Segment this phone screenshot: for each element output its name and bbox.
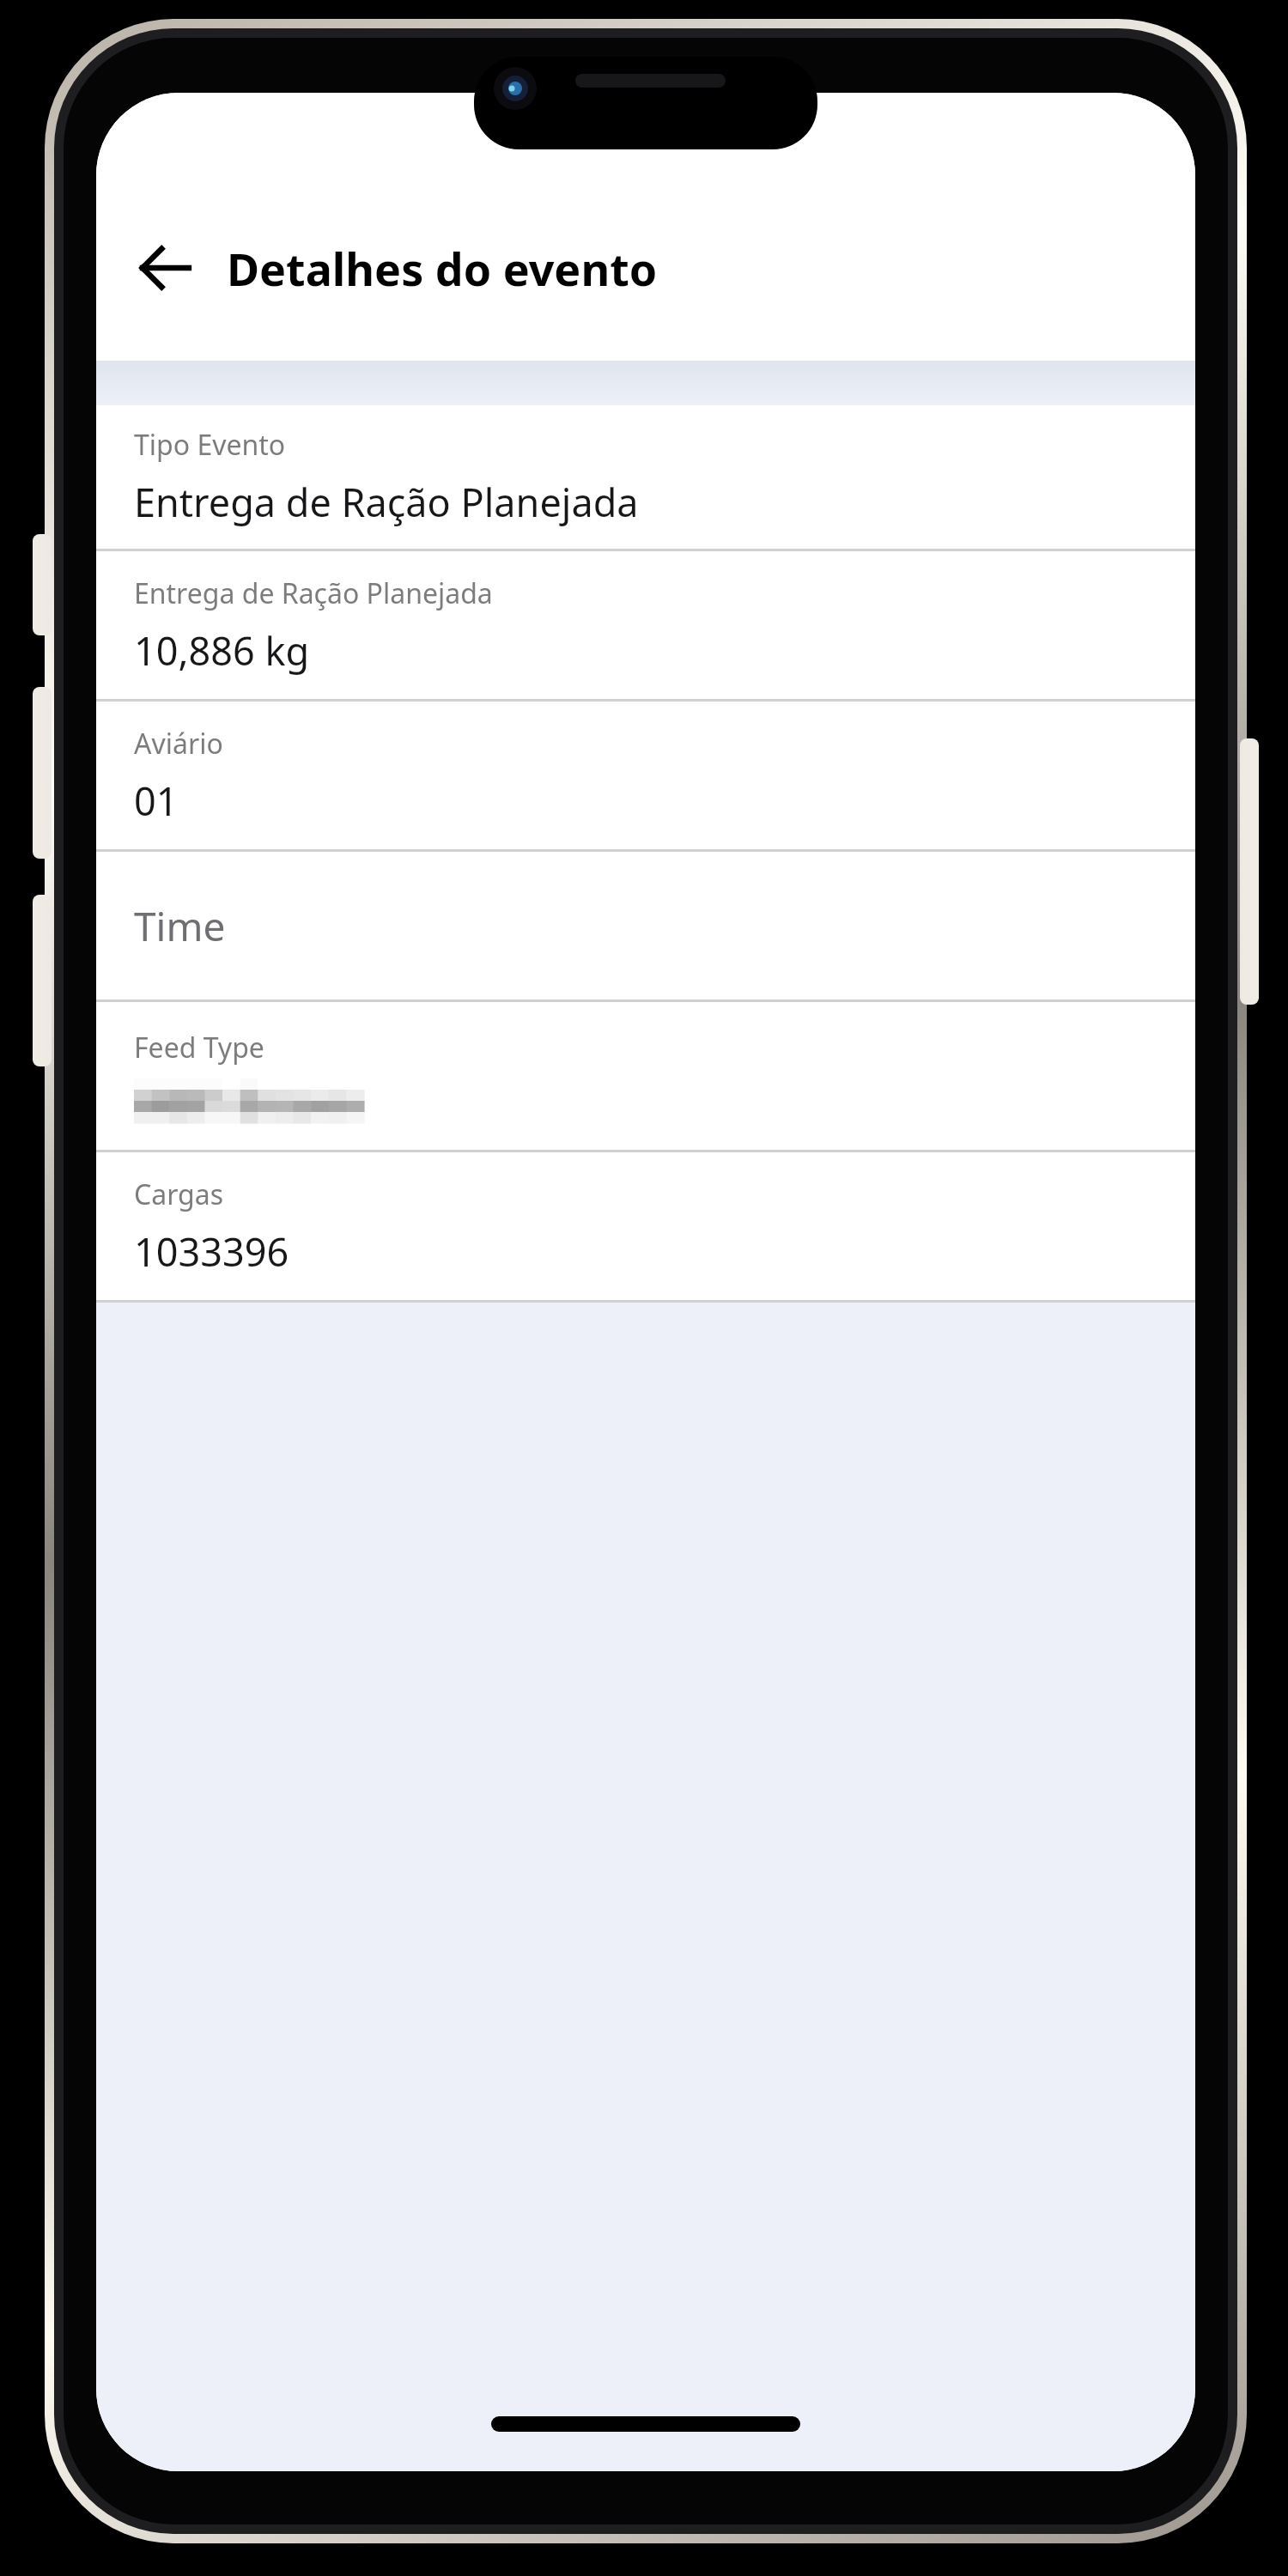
button[interactable]: Voltar — [117, 220, 213, 316]
button[interactable]: Entrega de Ração Planejada — [96, 551, 1195, 699]
staticText: 01 — [134, 775, 179, 827]
button[interactable]: Feed Type — [96, 1002, 1195, 1150]
button[interactable]: Aviário — [96, 702, 1195, 849]
staticText: Cargas — [134, 1176, 224, 1213]
staticText: Feed Type — [134, 1029, 264, 1066]
button[interactable]: Time — [96, 852, 1195, 999]
staticText: 1033396 — [134, 1225, 289, 1278]
staticText: Entrega de Ração Planejada — [134, 574, 493, 612]
staticText: Detalhes do evento — [227, 238, 658, 299]
staticText: Aviário — [134, 725, 223, 762]
staticText: 10,886 kg — [134, 624, 310, 677]
button[interactable]: Cargas — [96, 1152, 1195, 1300]
staticText: Time — [134, 899, 226, 953]
button[interactable]: Tipo Evento — [96, 405, 1195, 549]
staticText: Entrega de Ração Planejada — [134, 476, 639, 528]
staticText: Tipo Evento — [134, 426, 286, 464]
